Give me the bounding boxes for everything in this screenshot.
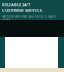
staticText: Fast help whenever you need it, day or n… <box>2 15 56 22</box>
staticText: RELIABLE 24/7 <box>2 2 30 7</box>
staticText: CUSTOMER SERVICE <box>2 7 42 13</box>
